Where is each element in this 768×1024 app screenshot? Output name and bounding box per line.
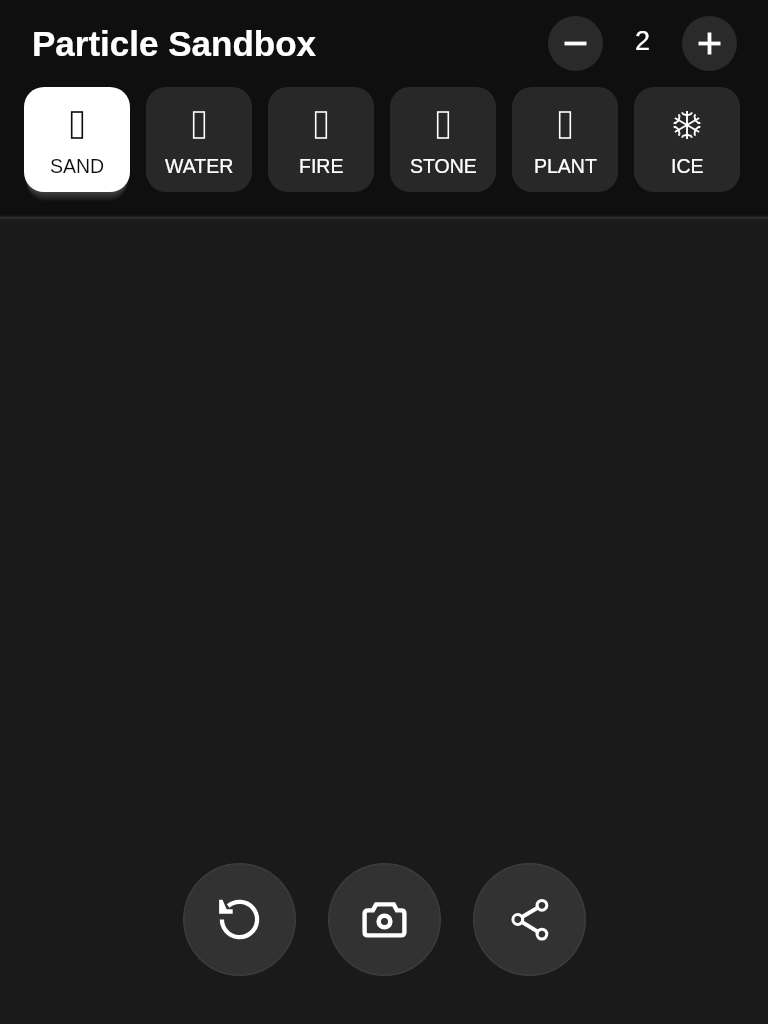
staticText: 2 bbox=[635, 26, 651, 56]
button[interactable]: Decrease brush size bbox=[548, 16, 603, 71]
staticText: SAND bbox=[50, 155, 105, 177]
staticText: FIRE bbox=[299, 155, 344, 177]
button[interactable]: Share bbox=[473, 863, 586, 976]
staticText: WATER bbox=[165, 155, 234, 177]
staticText: ICE bbox=[671, 155, 704, 177]
button[interactable]: STONE bbox=[390, 87, 496, 192]
button[interactable]: WATER bbox=[146, 87, 252, 192]
button[interactable]: FIRE bbox=[268, 87, 374, 192]
button[interactable]: Take snapshot bbox=[328, 863, 441, 976]
button[interactable]: ICE bbox=[634, 87, 740, 192]
button[interactable]: Increase brush size bbox=[682, 16, 737, 71]
button[interactable]: PLANT bbox=[512, 87, 618, 192]
staticText: Particle Sandbox bbox=[32, 24, 316, 63]
button[interactable]: SAND bbox=[24, 87, 130, 192]
button[interactable]: Reset canvas bbox=[183, 863, 296, 976]
staticText: PLANT bbox=[534, 155, 597, 177]
staticText: STONE bbox=[410, 155, 477, 177]
